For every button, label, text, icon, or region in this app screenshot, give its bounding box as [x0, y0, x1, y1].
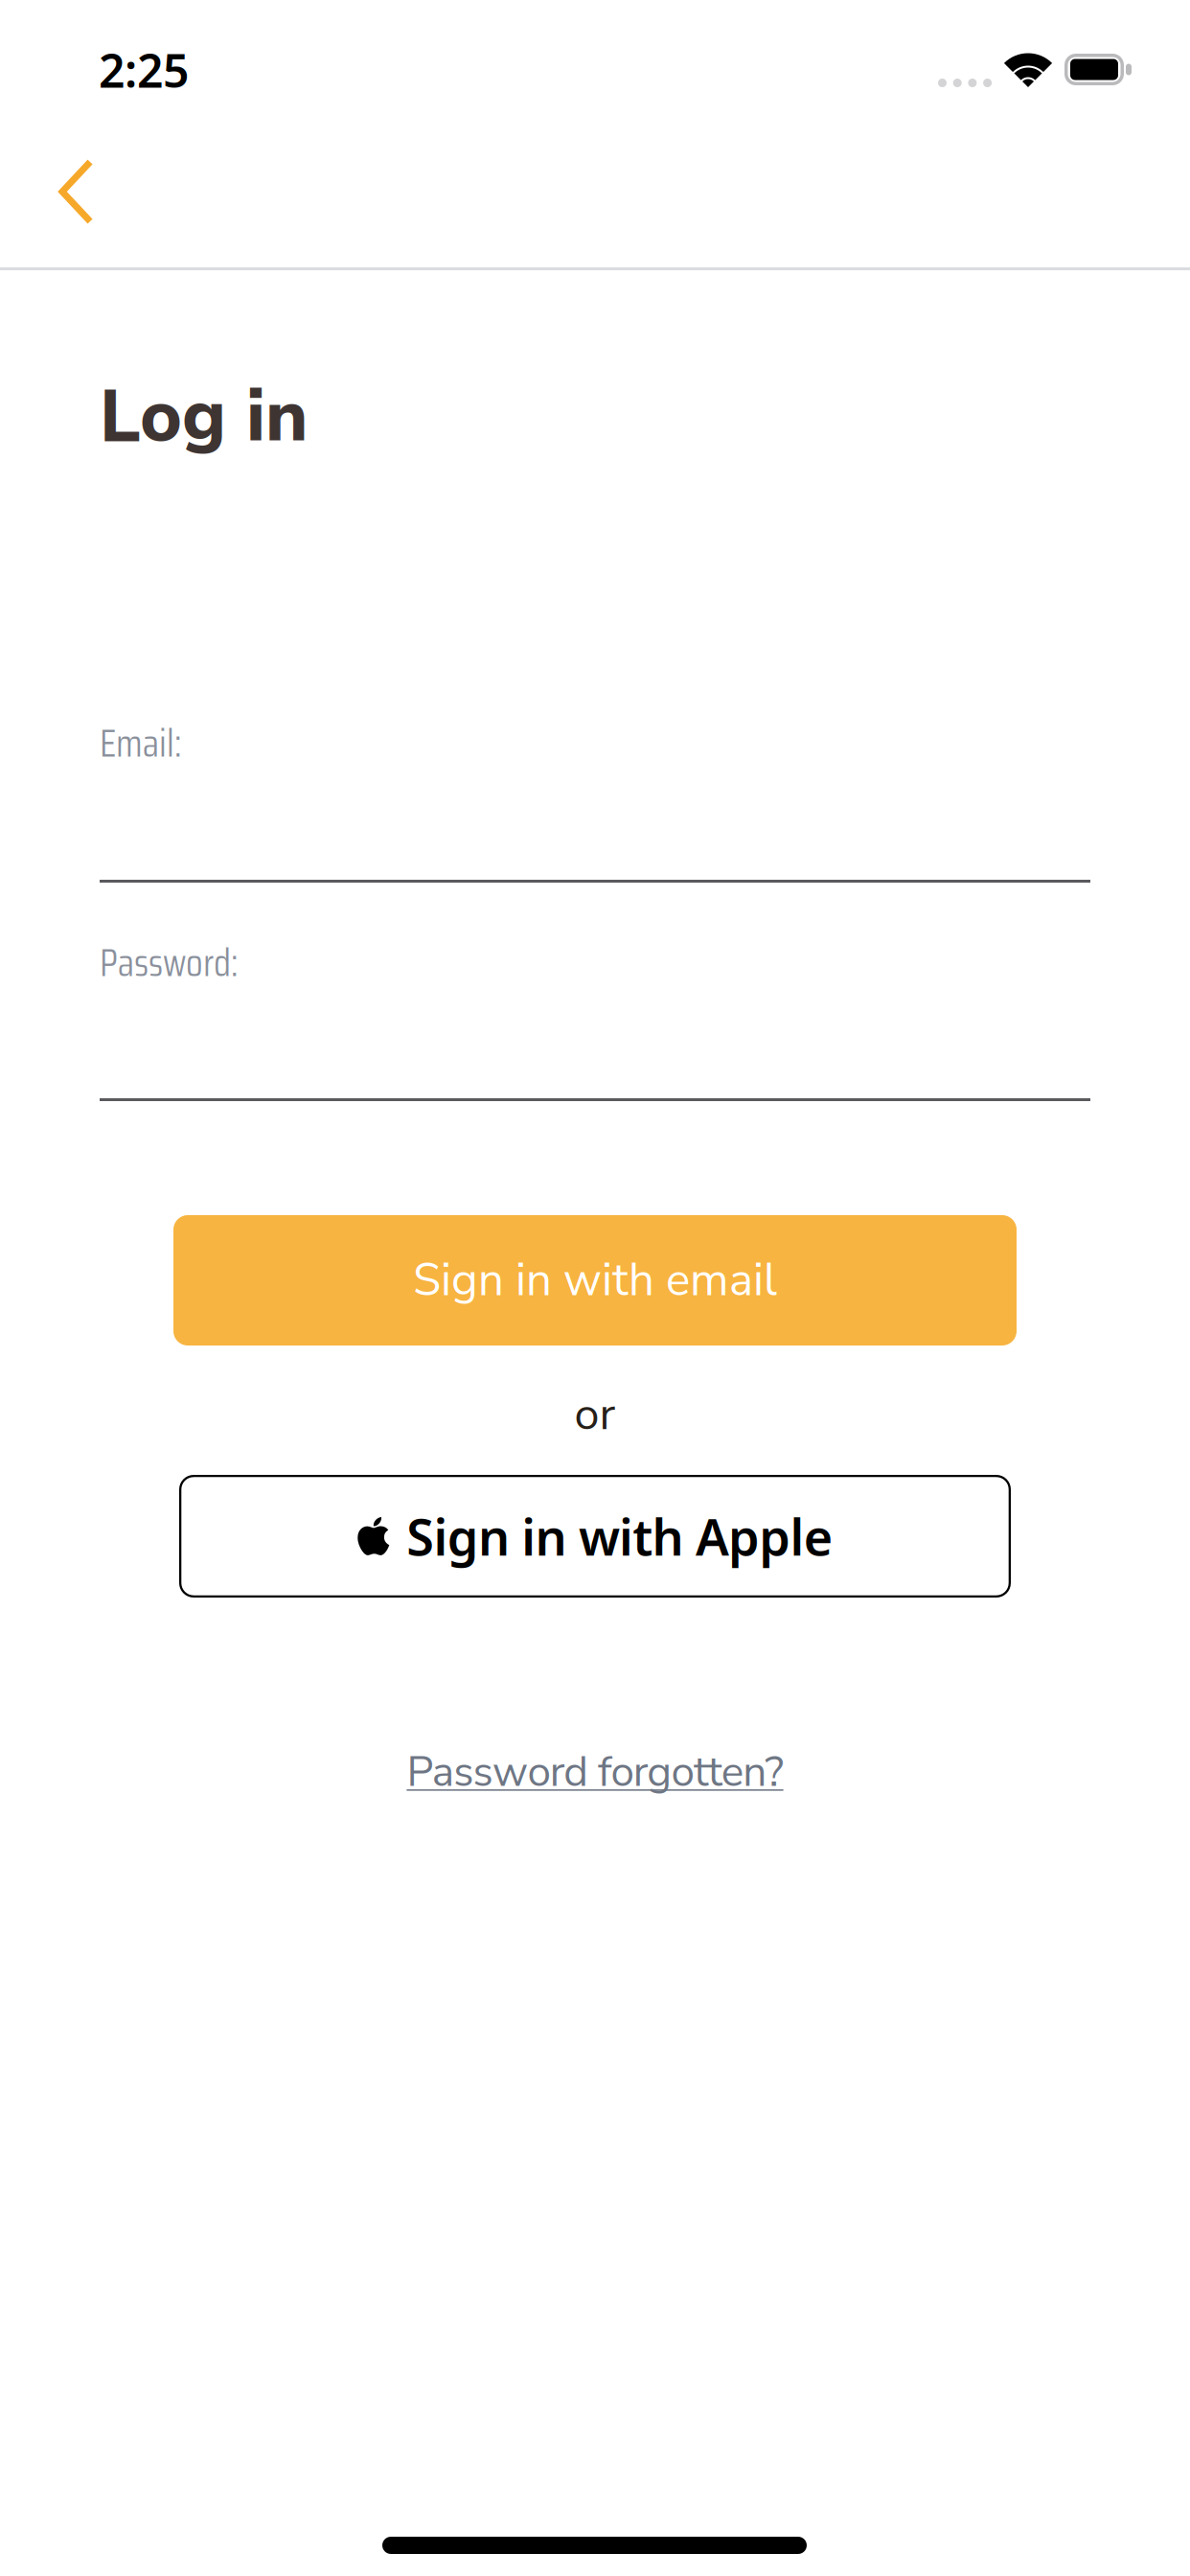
button[interactable]: Password: — [100, 932, 1090, 1105]
staticText: 2:25 — [99, 39, 189, 100]
staticText: or — [574, 1384, 616, 1445]
staticText: Password: — [100, 932, 238, 993]
staticText: Log in — [100, 368, 308, 466]
button[interactable]: Email: — [100, 713, 1090, 885]
staticText: Password forgotten? — [407, 1743, 783, 1801]
button[interactable]: Sign in with email — [173, 1215, 1017, 1345]
staticText: Sign in with email — [413, 1249, 777, 1311]
staticText: Sign in with Apple — [407, 1503, 832, 1569]
staticText: Email: — [100, 713, 181, 773]
button[interactable]: Password forgotten? — [0, 1743, 1190, 1801]
button[interactable]: Sign in with Apple — [179, 1475, 1011, 1598]
button[interactable]: Back — [32, 146, 120, 238]
